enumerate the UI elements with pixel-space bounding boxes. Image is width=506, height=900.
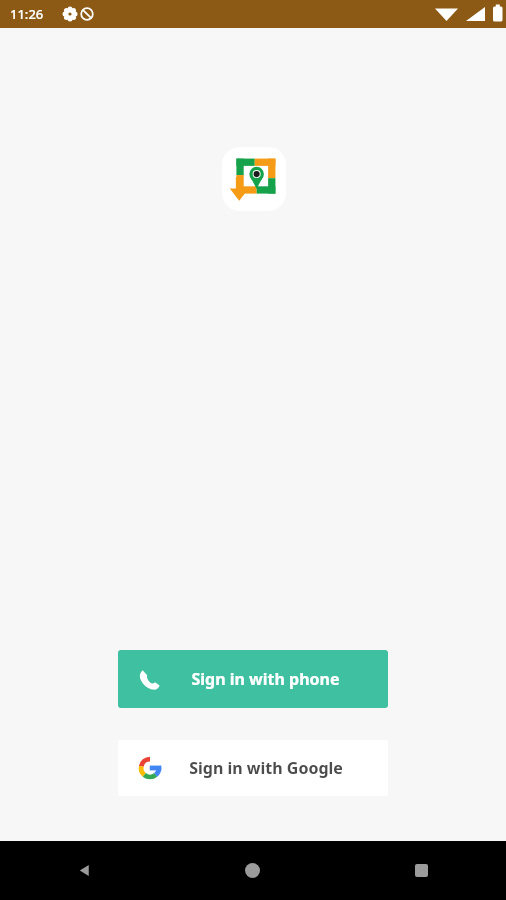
staticText: Sign in with phone bbox=[191, 668, 340, 690]
button[interactable]: Home bbox=[168, 841, 337, 900]
staticText: 11:26 bbox=[10, 5, 44, 23]
button[interactable]: Sign in with phone bbox=[118, 650, 388, 708]
button[interactable]: Back bbox=[0, 841, 168, 900]
button[interactable]: Sign in with Google bbox=[118, 740, 388, 796]
staticText: Sign in with Google bbox=[189, 757, 343, 779]
button[interactable]: Recent apps bbox=[337, 841, 506, 900]
